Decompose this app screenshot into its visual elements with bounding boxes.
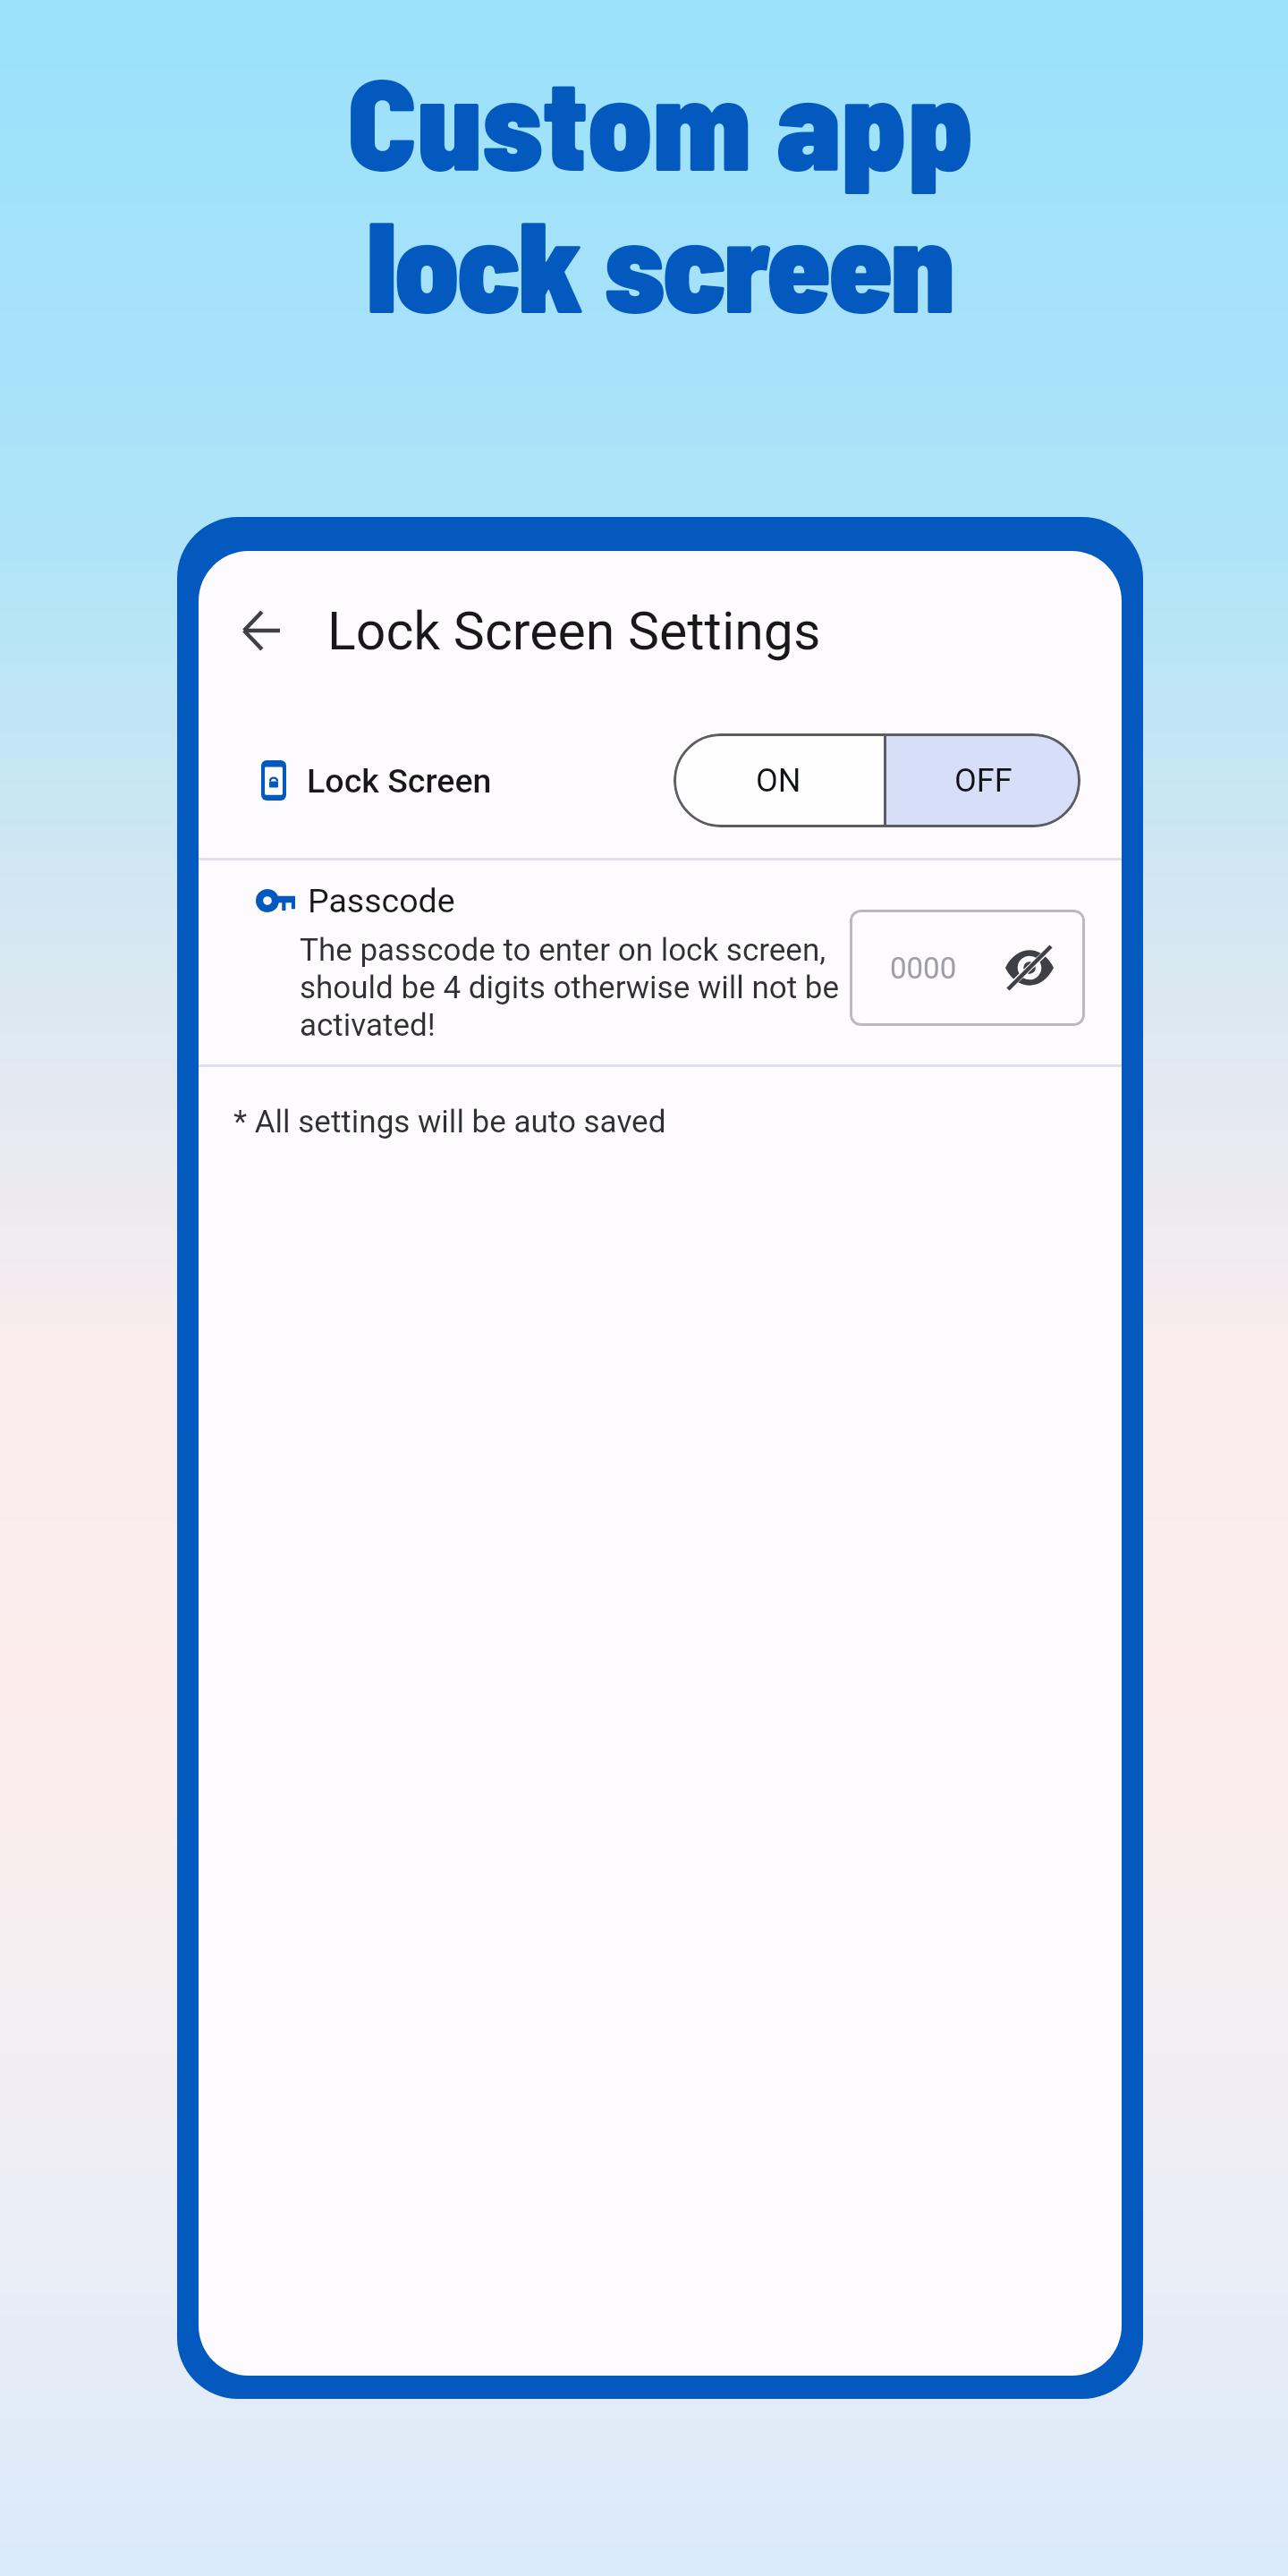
button[interactable]: Show passcode	[1002, 940, 1057, 996]
button[interactable]: Back	[218, 588, 304, 674]
button[interactable]: OFF	[886, 733, 1080, 827]
staticText: Passcode	[308, 881, 455, 920]
staticText: ON	[756, 762, 801, 800]
staticText: 0000	[890, 951, 957, 986]
staticText: The passcode to enter on lock screen, sh…	[300, 932, 854, 1044]
button[interactable]: 0000	[850, 910, 1085, 1026]
staticText: Custom app	[17, 43, 1288, 197]
staticText: Lock Screen Settings	[327, 600, 821, 662]
staticText: * All settings will be auto saved	[233, 1104, 666, 1140]
staticText: lock screen	[15, 185, 1288, 339]
staticText: Lock Screen	[307, 761, 492, 801]
button[interactable]: ON	[674, 733, 884, 827]
staticText: OFF	[954, 762, 1013, 800]
